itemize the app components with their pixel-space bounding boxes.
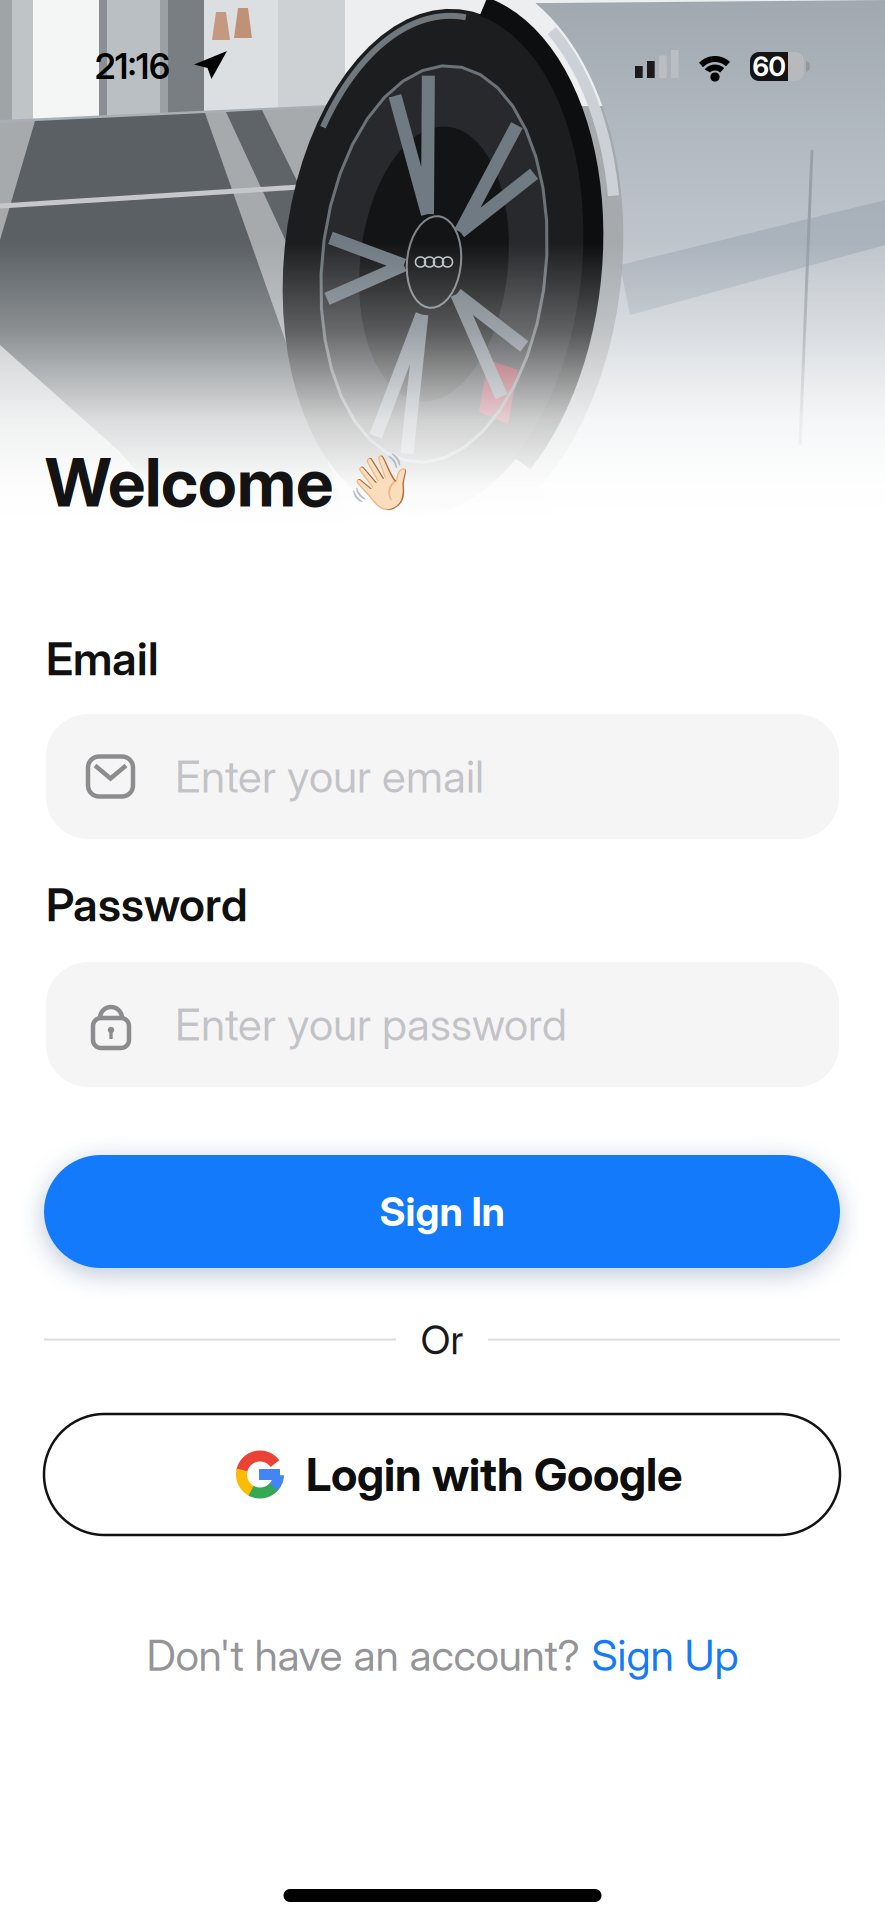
staticText: Welcome	[45, 443, 333, 522]
button[interactable]: Enter your password	[46, 962, 839, 1087]
staticText: Enter your password	[175, 998, 567, 1050]
button[interactable]: Sign In	[44, 1155, 840, 1268]
staticText: 21:16	[95, 46, 170, 87]
staticText: Don't have an account?	[146, 1630, 579, 1680]
button[interactable]: Sign Up	[591, 1630, 738, 1680]
staticText: Enter your email	[175, 750, 484, 802]
staticText: Login with Google	[306, 1448, 682, 1501]
staticText: Or	[420, 1316, 463, 1363]
staticText: 60	[752, 51, 785, 82]
button[interactable]: Login with Google	[44, 1414, 840, 1535]
button[interactable]: Enter your email	[46, 714, 839, 839]
staticText: Email	[46, 632, 159, 685]
staticText: Password	[46, 878, 248, 931]
staticText: Sign In	[379, 1188, 504, 1235]
staticText: 👋🏻	[347, 451, 415, 514]
staticText: Sign Up	[591, 1630, 738, 1680]
